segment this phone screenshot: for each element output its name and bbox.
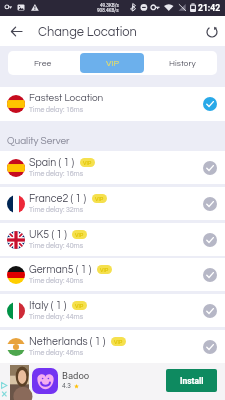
- button[interactable]: Free: [11, 53, 74, 73]
- staticText: History: [169, 59, 196, 68]
- staticText: UK5 ( 1 ): [29, 229, 67, 240]
- staticText: Time delay: 40ms: [29, 277, 84, 284]
- button[interactable]: German5 ( 1 ): [0, 258, 225, 291]
- staticText: Badoo: [62, 370, 90, 381]
- staticText: Free: [34, 59, 52, 68]
- staticText: Italy ( 1 ): [29, 300, 67, 311]
- staticText: VIP: [106, 59, 119, 68]
- staticText: 21:42: [198, 3, 221, 13]
- staticText: VIP: [75, 303, 84, 309]
- button[interactable]: Spain ( 1 ): [0, 151, 225, 184]
- staticText: 49.3KB/s: [100, 3, 119, 8]
- staticText: Install: [180, 376, 204, 386]
- staticText: Fastest Location: [29, 93, 104, 103]
- staticText: 4.3: [62, 382, 72, 390]
- staticText: Netherlands ( 1 ): [29, 336, 106, 347]
- button[interactable]: History: [150, 53, 214, 73]
- staticText: VIP: [95, 196, 104, 202]
- button[interactable]: Install: [166, 369, 217, 392]
- staticText: Time delay: 40ms: [29, 242, 84, 249]
- staticText: France2 ( 1 ): [29, 193, 87, 204]
- staticText: Time delay: 32ms: [29, 206, 84, 213]
- staticText: Time delay: 46ms: [29, 349, 84, 356]
- staticText: German5 ( 1 ): [29, 264, 92, 275]
- staticText: VIP: [83, 160, 92, 166]
- button[interactable]: Back: [6, 21, 27, 42]
- staticText: 908.4KB/s: [97, 8, 119, 13]
- staticText: Time delay: 16ms: [29, 106, 84, 113]
- button[interactable]: France2 ( 1 ): [0, 187, 225, 220]
- button[interactable]: Fastest Location: [0, 87, 225, 121]
- staticText: Quality Server: [7, 136, 70, 146]
- button[interactable]: UK5 ( 1 ): [0, 223, 225, 256]
- staticText: VIP: [114, 339, 123, 345]
- staticText: VIP: [75, 232, 84, 238]
- button[interactable]: Italy ( 1 ): [0, 294, 225, 327]
- button[interactable]: Refresh: [201, 21, 222, 42]
- button[interactable]: Netherlands ( 1 ): [0, 330, 225, 363]
- staticText: Change Location: [38, 25, 137, 38]
- button[interactable]: VIP: [80, 53, 144, 73]
- staticText: Time delay: 44ms: [29, 313, 84, 320]
- staticText: VIP: [100, 267, 109, 273]
- staticText: Time delay: 16ms: [29, 170, 84, 177]
- staticText: Spain ( 1 ): [29, 157, 75, 168]
